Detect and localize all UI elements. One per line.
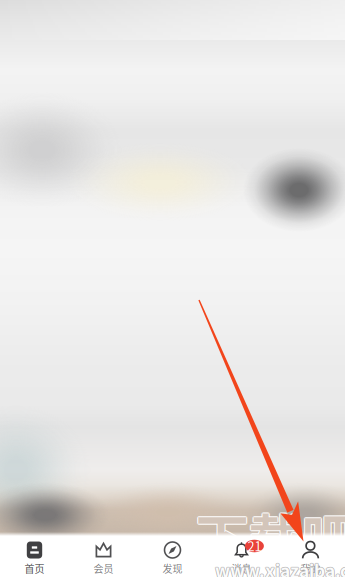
button[interactable]: 发现	[138, 536, 207, 577]
staticText: www.xiazaiba.com	[216, 557, 345, 577]
staticText: 我的	[300, 561, 320, 576]
staticText: 下载吧	[195, 498, 345, 575]
button[interactable]: 会员	[69, 536, 138, 577]
button[interactable]: 首页	[0, 536, 69, 577]
staticText: www.xiazaiba.com	[214, 558, 345, 577]
staticText: 下载吧	[194, 497, 345, 575]
staticText: www.xiazaiba.com	[214, 557, 345, 577]
staticText: 下载吧	[195, 496, 345, 573]
staticText: 下载吧	[195, 498, 345, 576]
staticText: 会员	[93, 561, 113, 576]
staticText: www.xiazaiba.com	[215, 557, 345, 577]
staticText: 下载吧	[196, 497, 345, 574]
staticText: 下载吧	[196, 498, 345, 575]
staticText: www.xiazaiba.com	[214, 557, 345, 577]
staticText: 21	[247, 536, 261, 555]
staticText: 下载吧	[197, 497, 345, 575]
staticText: www.xiazaiba.com	[216, 558, 345, 577]
staticText: 发现	[162, 561, 182, 576]
staticText: www.xiazaiba.com	[216, 557, 345, 577]
button[interactable]: 消息	[207, 536, 276, 577]
staticText: 下载吧	[195, 497, 345, 574]
staticText: 下载吧	[195, 497, 345, 575]
staticText: www.xiazaiba.com	[215, 557, 345, 577]
staticText: 消息	[231, 561, 251, 576]
staticText: 首页	[24, 561, 44, 576]
staticText: www.xiazaiba.com	[215, 558, 345, 577]
button[interactable]: 我的	[276, 536, 345, 577]
